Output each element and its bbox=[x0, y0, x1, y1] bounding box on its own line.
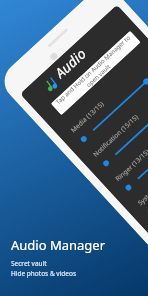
staticText: Ringer (13/15) bbox=[113, 147, 148, 183]
staticText: Audio Manager bbox=[11, 236, 106, 254]
staticText: Tap and Hold on Audio Manager to open va… bbox=[53, 33, 138, 113]
staticText: Secret vault bbox=[11, 259, 47, 268]
staticText: Audio Manager bbox=[51, 6, 133, 84]
staticText: System (13/15) bbox=[136, 170, 148, 207]
staticText: Media (13/15) bbox=[69, 99, 106, 134]
staticText: Notification (15/15) bbox=[91, 112, 140, 159]
staticText: Hide photos & videos bbox=[11, 269, 77, 278]
